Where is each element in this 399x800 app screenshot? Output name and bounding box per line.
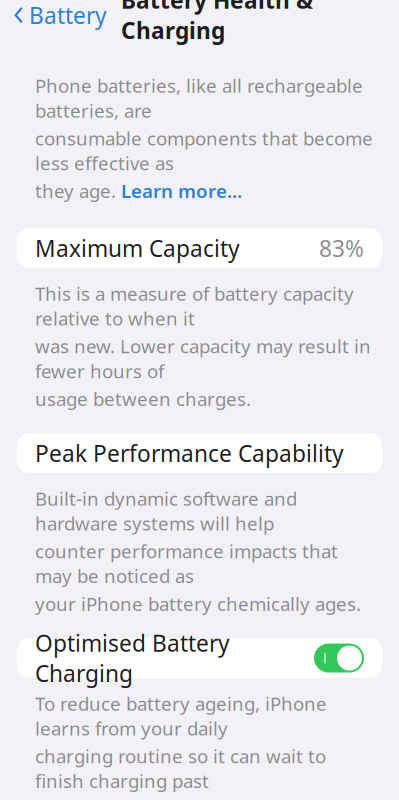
staticText: 83% [319, 233, 364, 263]
staticText: consumable components that become less e… [35, 126, 373, 175]
staticText: To reduce battery ageing, iPhone learns … [35, 691, 327, 741]
button[interactable]: Peak Performance Capability [17, 433, 382, 473]
staticText: Battery [29, 0, 107, 30]
staticText: Maximum Capacity [35, 233, 240, 263]
staticText: This is a measure of battery capacity re… [35, 281, 354, 331]
button[interactable]: Maximum Capacity [17, 228, 382, 268]
staticText: Optimised Battery Charging [35, 628, 230, 688]
staticText: usage between charges. [35, 386, 251, 411]
button[interactable]: Optimised Battery Charging [17, 638, 382, 678]
staticText: charging routine so it can wait to finis… [35, 744, 326, 793]
staticText: was new. Lower capacity may result in fe… [35, 334, 371, 383]
button[interactable]: Learn more... [121, 178, 242, 203]
staticText: Peak Performance Capability [35, 438, 344, 468]
staticText: Phone batteries, like all rechargeable b… [35, 73, 363, 123]
staticText: your iPhone battery chemically ages. [35, 591, 361, 616]
staticText: Battery Health & Charging [121, 0, 313, 45]
staticText: they age. [35, 178, 121, 203]
staticText: Built-in dynamic software and hardware s… [35, 486, 297, 536]
staticText: counter performance impacts that may be … [35, 539, 338, 588]
button[interactable]: Optimised Battery Charging [314, 644, 364, 673]
button[interactable]: Battery [0, 0, 107, 36]
staticText: Learn more... [121, 178, 242, 203]
